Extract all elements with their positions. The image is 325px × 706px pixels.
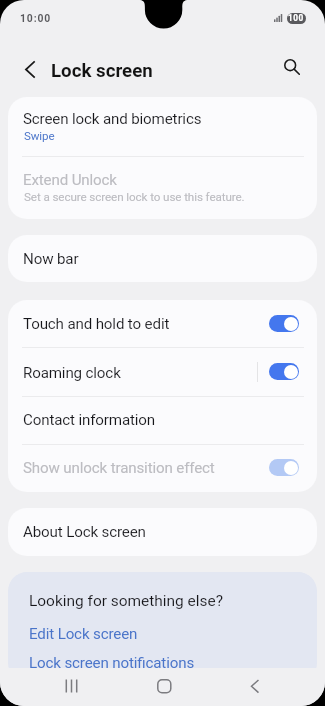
button[interactable] xyxy=(8,508,317,556)
button[interactable]: Toggle xyxy=(269,315,299,332)
button[interactable] xyxy=(8,396,317,444)
staticText: Lock screen notifications xyxy=(29,654,195,672)
button[interactable]: Search xyxy=(277,52,308,83)
button[interactable] xyxy=(8,347,317,396)
staticText: About Lock screen xyxy=(23,523,146,541)
button[interactable] xyxy=(8,649,317,671)
button[interactable]: Home xyxy=(137,667,191,705)
staticText: Now bar xyxy=(23,250,79,268)
button[interactable] xyxy=(8,300,317,348)
button[interactable] xyxy=(8,620,317,646)
button[interactable]: Toggle xyxy=(269,459,299,476)
staticText: Extend Unlock xyxy=(23,171,117,189)
button[interactable]: Back xyxy=(14,54,45,85)
staticText: 100 xyxy=(288,13,304,23)
button[interactable]: Toggle xyxy=(269,363,299,380)
button[interactable] xyxy=(8,97,317,156)
staticText: Show unlock transition effect xyxy=(23,459,215,477)
staticText: Touch and hold to edit xyxy=(23,315,170,333)
staticText: Edit Lock screen xyxy=(29,625,138,643)
staticText: Looking for something else? xyxy=(29,592,223,610)
staticText: Contact information xyxy=(23,411,156,429)
button[interactable]: Recents xyxy=(45,667,99,705)
staticText: Set a secure screen lock to use this fea… xyxy=(24,190,245,204)
button[interactable] xyxy=(8,235,317,282)
button[interactable] xyxy=(8,156,317,219)
staticText: 10:00 xyxy=(20,12,52,24)
staticText: Swipe xyxy=(24,129,55,143)
staticText: Roaming clock xyxy=(23,364,121,382)
button[interactable] xyxy=(8,444,317,491)
staticText: Lock screen xyxy=(51,60,153,82)
button[interactable]: Back xyxy=(228,667,282,705)
staticText: Screen lock and biometrics xyxy=(23,110,202,128)
